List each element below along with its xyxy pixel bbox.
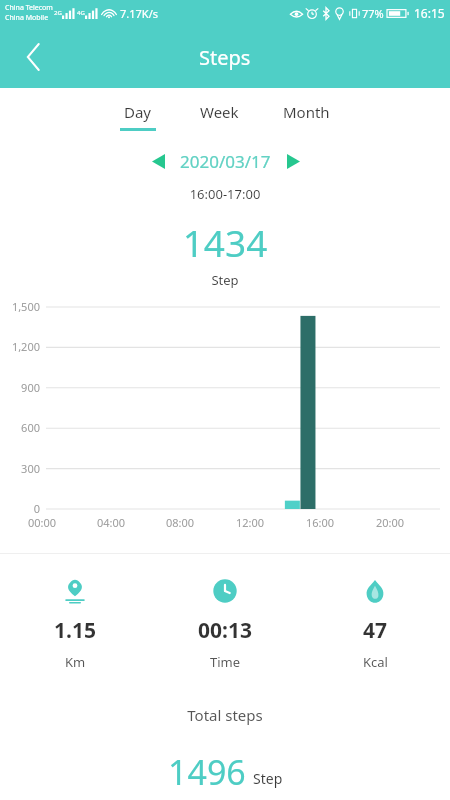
staticText: 00:13 [198, 616, 252, 645]
button[interactable]: 1.15 [0, 578, 150, 671]
staticText: 08:00 [166, 515, 195, 530]
staticText: Km [65, 653, 86, 671]
staticText: 16:15 [414, 5, 445, 21]
staticText: 1,500 [0, 299, 40, 314]
staticText: 0 [0, 501, 40, 516]
button[interactable]: Week [192, 100, 247, 133]
staticText: 900 [0, 380, 40, 395]
button[interactable]: Month [275, 100, 338, 133]
staticText: 1.15 [54, 616, 96, 645]
staticText: 2G [54, 9, 62, 17]
button[interactable]: Back [10, 34, 56, 80]
staticText: 16:00-17:00 [0, 185, 450, 203]
button[interactable]: Previous day [144, 147, 172, 175]
staticText: 1,200 [0, 339, 40, 354]
staticText: China Telecom [5, 3, 53, 13]
button[interactable]: 47 [300, 578, 450, 671]
staticText: Week [200, 102, 239, 122]
button[interactable]: 00:13 [150, 578, 300, 671]
staticText: 1434 [0, 217, 450, 267]
staticText: Step [0, 271, 450, 289]
staticText: Steps [199, 44, 251, 71]
staticText: 2020/03/17 [180, 150, 271, 173]
staticText: 300 [0, 461, 40, 476]
staticText: 1496 [168, 749, 246, 795]
staticText: 04:00 [97, 515, 126, 530]
staticText: Time [210, 653, 241, 671]
staticText: 12:00 [236, 515, 265, 530]
staticText: 16:00 [306, 515, 335, 530]
staticText: 600 [0, 420, 40, 435]
staticText: Total steps [0, 705, 450, 725]
staticText: 7.17K/s [120, 6, 158, 21]
staticText: 20:00 [376, 515, 405, 530]
staticText: Kcal [363, 653, 388, 671]
button[interactable]: Next day [279, 147, 307, 175]
staticText: Month [283, 102, 330, 122]
staticText: 4G [77, 9, 85, 17]
staticText: Step [253, 769, 283, 788]
staticText: 00:00 [28, 515, 57, 530]
staticText: 47 [363, 616, 388, 645]
staticText: China Mobile [5, 13, 49, 23]
button[interactable]: Day [112, 100, 164, 133]
staticText: 77% [362, 6, 384, 21]
staticText: Day [124, 102, 152, 122]
